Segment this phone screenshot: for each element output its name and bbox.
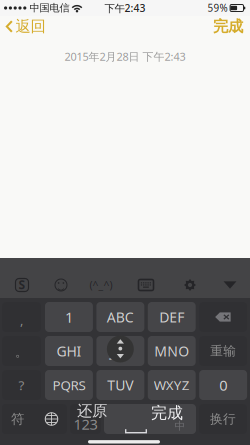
button[interactable]: 123 — [70, 404, 101, 434]
button[interactable]: Settings — [172, 272, 208, 298]
staticText: , — [20, 311, 23, 329]
button[interactable]: Switch keyboard — [36, 404, 67, 434]
staticText: 返回 — [15, 17, 45, 36]
button[interactable]: ! — [2, 404, 41, 434]
staticText: 下午2:43 — [104, 1, 145, 15]
staticText: S — [18, 276, 25, 293]
staticText: 59% — [207, 1, 227, 15]
staticText: 1 — [65, 307, 73, 327]
staticText: PQRS — [52, 376, 85, 394]
button[interactable]: Kaomoji — [83, 272, 119, 298]
button[interactable]: 换行 — [199, 404, 247, 434]
staticText: 符 — [11, 411, 24, 427]
staticText: 中国电信 — [29, 2, 69, 14]
staticText: 2015年2月28日 下午2:43 — [64, 49, 185, 64]
staticText: DEF — [159, 307, 184, 327]
staticText: 完成 — [151, 403, 183, 423]
button[interactable]: Space — [104, 404, 196, 434]
button[interactable]: 1 — [45, 302, 93, 332]
staticText: ! — [19, 410, 23, 428]
button[interactable]: 完成 — [206, 14, 250, 39]
button[interactable]: , — [2, 302, 41, 332]
staticText: TUV — [107, 375, 133, 395]
button[interactable]: TUV — [96, 370, 144, 400]
button[interactable]: ABC — [96, 302, 144, 332]
staticText: (^_^) — [89, 278, 112, 292]
button[interactable]: Delete — [199, 302, 247, 332]
button[interactable]: Collapse keyboard — [212, 272, 248, 298]
staticText: 还原 — [77, 401, 107, 421]
button[interactable]: Sogou input — [4, 272, 40, 298]
button[interactable]: JKL — [96, 336, 144, 366]
button[interactable]: 返回 — [0, 14, 55, 39]
staticText: 重输 — [210, 343, 236, 359]
staticText: 。 — [15, 344, 28, 360]
button[interactable]: Keyboard layout — [128, 272, 164, 298]
staticText: JKL — [110, 341, 130, 361]
button[interactable]: DEF — [148, 302, 196, 332]
button[interactable]: ? — [2, 370, 41, 400]
button[interactable]: Emoji — [43, 272, 79, 298]
button[interactable]: 符 — [2, 404, 33, 434]
button[interactable]: GHI — [45, 336, 93, 366]
button[interactable]: 。 — [2, 336, 41, 366]
button[interactable]: PQRS — [45, 370, 93, 400]
staticText: ABC — [107, 307, 134, 327]
staticText: WXYZ — [154, 376, 190, 394]
staticText: 0 — [219, 375, 227, 395]
button[interactable]: 重输 — [199, 336, 247, 366]
staticText: 123 — [73, 414, 97, 434]
staticText: 完成 — [213, 17, 243, 36]
staticText: ? — [18, 376, 24, 394]
staticText: GHI — [56, 341, 81, 361]
button[interactable]: MNO — [148, 336, 196, 366]
button[interactable]: 0 — [199, 370, 247, 400]
staticText: 换行 — [210, 411, 236, 427]
button[interactable]: WXYZ — [148, 370, 196, 400]
staticText: MNO — [154, 341, 189, 361]
staticText: 中 — [174, 419, 185, 433]
